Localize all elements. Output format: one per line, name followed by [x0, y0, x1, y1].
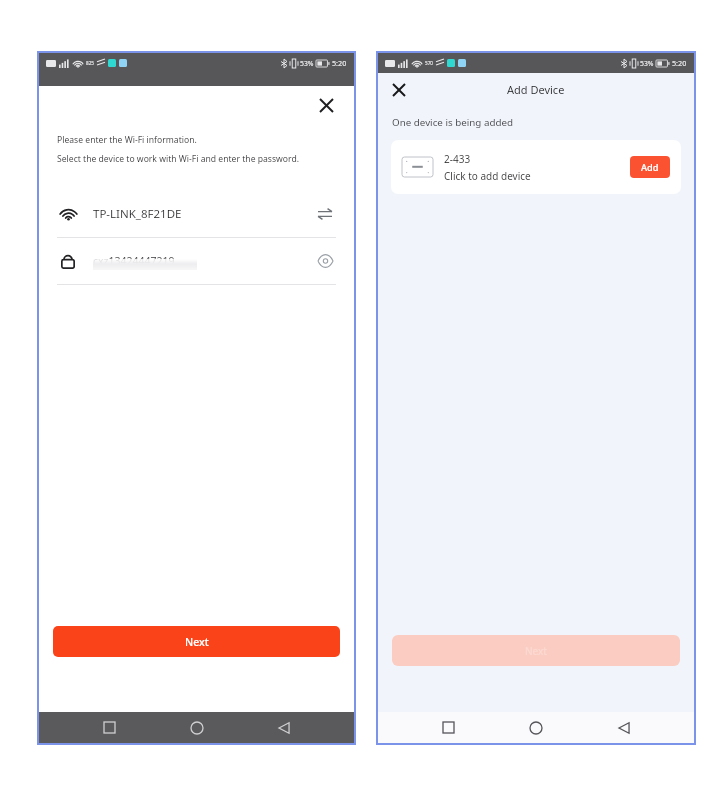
button[interactable]: Close	[312, 91, 340, 119]
staticText: TP-LINK_8F21DE	[93, 206, 182, 222]
button[interactable]: Recents	[91, 712, 127, 743]
staticText: 5:20	[672, 58, 687, 68]
staticText: cxz13424447219	[93, 254, 175, 268]
button[interactable]: TP-LINK_8F21DE	[39, 191, 354, 237]
staticText: One device is being added	[392, 116, 513, 129]
button[interactable]: Switch network	[314, 203, 336, 225]
button[interactable]: Home	[179, 712, 215, 743]
staticText: Click to add device	[444, 169, 531, 183]
staticText: 2-433	[444, 152, 471, 166]
staticText: Please enter the Wi-Fi information.	[57, 134, 197, 146]
staticText: Select the device to work with Wi-Fi and…	[57, 153, 300, 165]
staticText: Add Device	[507, 82, 565, 97]
staticText: 53%	[300, 59, 314, 68]
button[interactable]: Back	[266, 712, 302, 743]
button[interactable]: Show password	[314, 250, 336, 272]
button[interactable]: Home	[518, 712, 554, 743]
staticText: 825	[86, 60, 94, 66]
staticText: 570	[425, 60, 433, 66]
button[interactable]: Recents	[430, 712, 466, 743]
button[interactable]: Back	[606, 712, 642, 743]
staticText: 53%	[640, 59, 654, 68]
staticText: Next	[185, 635, 209, 649]
button[interactable]: Add	[630, 156, 670, 178]
button[interactable]: Close	[386, 77, 412, 103]
button[interactable]: Next	[392, 635, 680, 666]
staticText: Next	[525, 644, 547, 658]
button[interactable]: cxz13424447219	[39, 238, 354, 284]
button[interactable]: 2-433	[391, 140, 681, 194]
staticText: Add	[641, 161, 659, 174]
staticText: 5:20	[332, 58, 347, 68]
button[interactable]: Next	[53, 626, 340, 657]
